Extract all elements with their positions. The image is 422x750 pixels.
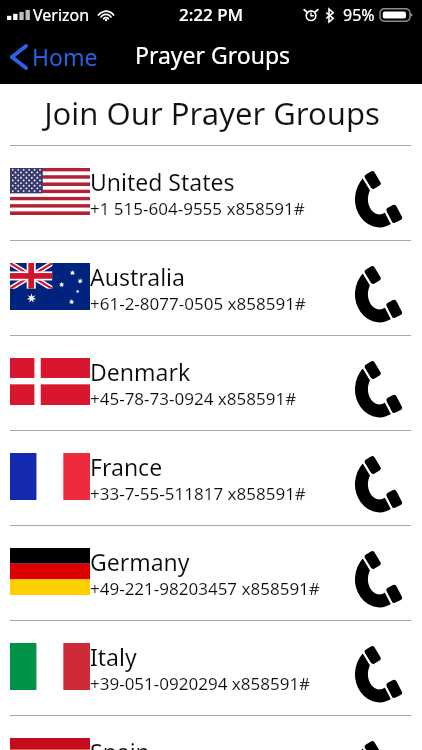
staticText: France	[90, 451, 163, 482]
staticText: +61-2-8077-0505 x858591#	[90, 292, 306, 315]
button[interactable]: Call Australia	[355, 267, 401, 323]
staticText: +45-78-73-0924 x858591#	[90, 387, 297, 410]
button[interactable]: Call Italy	[355, 647, 401, 703]
button[interactable]: Spain	[0, 716, 422, 750]
staticText: 95%	[343, 4, 375, 26]
button[interactable]: France	[0, 431, 422, 525]
staticText: Home	[32, 41, 98, 72]
staticText: +1 515-604-9555 x858591#	[90, 197, 305, 220]
button[interactable]: Call France	[355, 457, 401, 513]
staticText: Spain	[90, 736, 150, 750]
staticText: +33-7-55-511817 x858591#	[90, 482, 306, 505]
button[interactable]: Home	[0, 37, 108, 76]
button[interactable]: Denmark	[0, 336, 422, 430]
staticText: Australia	[90, 261, 185, 292]
staticText: Denmark	[90, 356, 191, 387]
staticText: Verizon	[33, 4, 90, 26]
button[interactable]: United States	[0, 146, 422, 240]
button[interactable]: Australia	[0, 241, 422, 335]
button[interactable]: Call Spain	[355, 742, 401, 750]
button[interactable]: Call Germany	[355, 552, 401, 608]
staticText: Join Our Prayer Groups	[44, 92, 380, 134]
staticText: +49-221-98203457 x858591#	[90, 577, 320, 600]
staticText: +39-051-0920294 x858591#	[90, 672, 311, 695]
staticText: Germany	[90, 546, 190, 577]
staticText: United States	[90, 166, 235, 197]
staticText: 2:22 PM	[179, 3, 244, 26]
button[interactable]: Call Denmark	[355, 362, 401, 418]
staticText: Prayer Groups	[135, 39, 291, 70]
button[interactable]: Italy	[0, 621, 422, 715]
staticText: Italy	[90, 641, 137, 672]
button[interactable]: Call United States	[355, 172, 401, 228]
button[interactable]: Germany	[0, 526, 422, 620]
